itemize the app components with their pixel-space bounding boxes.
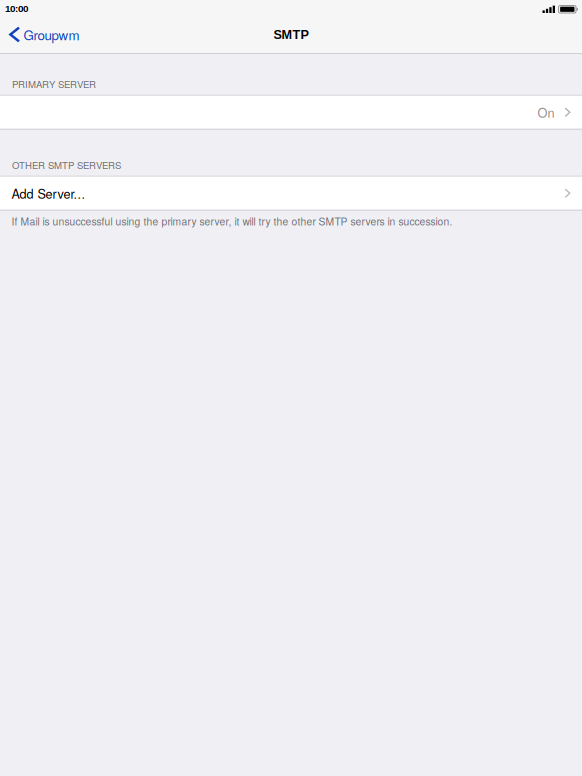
staticText: SMTP [273,27,308,42]
staticText: If Mail is unsuccessful using the primar… [11,214,452,228]
staticText: OTHER SMTP SERVERS [12,158,121,172]
button[interactable]: Primary Server, On [0,96,582,129]
staticText: PRIMARY SERVER [12,77,96,91]
button[interactable]: Groupwm [0,16,88,53]
staticText: Groupwm [23,25,79,44]
staticText: Add Server... [11,184,85,202]
staticText: On [537,103,554,121]
staticText: 10:00 [5,3,28,14]
button[interactable]: Add Server... [0,177,582,210]
